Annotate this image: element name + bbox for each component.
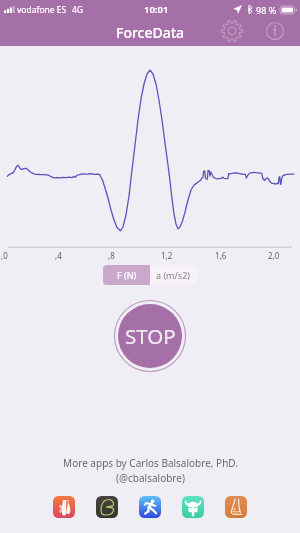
staticText: 2,0 — [268, 250, 280, 261]
staticText: F (N) — [117, 269, 137, 281]
staticText: ForceData — [116, 23, 185, 42]
staticText: ,0 — [1, 250, 8, 261]
button[interactable]: Settings — [219, 18, 245, 44]
button[interactable]: My Jump Lab — [53, 496, 75, 518]
staticText: (@cbalsalobre) — [116, 471, 185, 485]
staticText: More apps by Carlos Balsalobre, PhD. — [63, 456, 238, 470]
staticText: ,8 — [108, 250, 115, 261]
staticText: vodafone ES — [17, 4, 67, 16]
staticText: a (m/s2) — [156, 269, 191, 281]
staticText: 1,6 — [215, 250, 227, 261]
button[interactable]: Strength app — [96, 496, 118, 518]
button[interactable]: Sprint app — [139, 496, 161, 518]
button[interactable]: STOP — [114, 300, 186, 372]
button[interactable]: Ankle app — [225, 496, 247, 518]
button[interactable]: a (m/s2) — [150, 265, 197, 285]
staticText: 4G — [72, 4, 84, 16]
button[interactable]: F (N) — [103, 265, 150, 285]
staticText: 10:01 — [144, 3, 169, 16]
staticText: STOP — [125, 322, 176, 350]
staticText: 98 % — [256, 4, 277, 16]
staticText: ,4 — [55, 250, 62, 261]
button[interactable]: Nordics app — [182, 496, 204, 518]
staticText: 1,2 — [161, 250, 173, 261]
button[interactable]: Info — [262, 18, 288, 44]
